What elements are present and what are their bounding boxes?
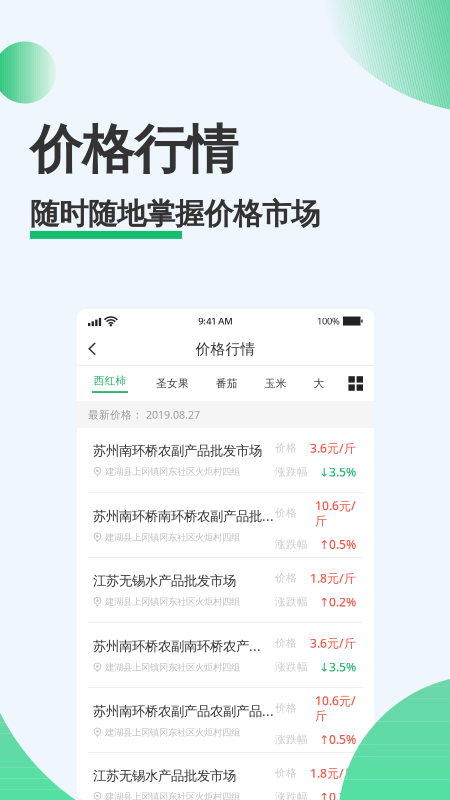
staticText: 价格行情 bbox=[195, 340, 255, 358]
staticText: 3.6元/斤 bbox=[310, 635, 356, 651]
staticText: 苏州南环桥农副产品批发市场 bbox=[93, 443, 262, 459]
staticText: 1.8元/斤 bbox=[310, 765, 356, 781]
button[interactable]: 玉米 bbox=[260, 371, 292, 396]
staticText: ↑0.5% bbox=[319, 536, 356, 552]
button[interactable]: 大 bbox=[308, 371, 329, 396]
button[interactable]: 江苏无锡水产品批发市场 bbox=[77, 558, 374, 623]
staticText: ↑0.2% bbox=[319, 789, 356, 800]
staticText: 番茄 bbox=[216, 377, 238, 390]
staticText: 涨跌幅 bbox=[275, 538, 308, 551]
staticText: 最新价格： 2019.08.27 bbox=[88, 407, 200, 422]
staticText: 建湖县上冈镇冈东社区火炬村四组 bbox=[105, 466, 240, 477]
staticText: ↓3.5% bbox=[319, 659, 356, 675]
staticText: 价格 bbox=[275, 441, 297, 455]
staticText: 苏州南环桥农副南环桥农产... bbox=[93, 637, 261, 655]
staticText: 建湖县上冈镇冈东社区火炬村四组 bbox=[105, 791, 240, 800]
staticText: 建湖县上冈镇冈东社区火炬村四组 bbox=[105, 727, 240, 738]
button[interactable]: 苏州南环桥农副产品批发市场 bbox=[77, 428, 374, 493]
staticText: 10.6元/斤 bbox=[315, 498, 356, 528]
button[interactable]: 番茄 bbox=[211, 371, 243, 396]
button[interactable]: Back bbox=[77, 333, 111, 365]
button[interactable]: 苏州南环桥农副南环桥农产... bbox=[77, 623, 374, 688]
button[interactable]: 西红柿 bbox=[86, 370, 134, 397]
staticText: 江苏无锡水产品批发市场 bbox=[93, 768, 236, 784]
staticText: ↓3.5% bbox=[319, 464, 356, 480]
button[interactable]: All categories bbox=[346, 370, 365, 397]
button[interactable]: 苏州南环桥南环桥农副产品批... bbox=[77, 493, 374, 558]
staticText: ↑0.2% bbox=[319, 594, 356, 610]
staticText: ↑0.5% bbox=[319, 731, 356, 747]
staticText: 价格行情 bbox=[30, 118, 238, 182]
staticText: 江苏无锡水产品批发市场 bbox=[93, 573, 236, 589]
staticText: 10.6元/斤 bbox=[315, 693, 356, 723]
staticText: 100% bbox=[317, 315, 340, 327]
staticText: 涨跌幅 bbox=[275, 790, 308, 800]
staticText: 西红柿 bbox=[93, 374, 126, 387]
staticText: 3.6元/斤 bbox=[310, 440, 356, 456]
button[interactable]: 圣女果 bbox=[151, 371, 194, 396]
button[interactable]: 江苏无锡水产品批发市场 bbox=[77, 753, 374, 800]
staticText: 大 bbox=[313, 377, 324, 390]
staticText: 玉米 bbox=[265, 377, 287, 390]
staticText: 价格 bbox=[275, 636, 297, 650]
staticText: 建湖县上冈镇冈东社区火炬村四组 bbox=[105, 532, 240, 543]
staticText: 价格 bbox=[275, 701, 297, 715]
staticText: 9:41 AM bbox=[198, 315, 233, 327]
staticText: 价格 bbox=[275, 766, 297, 780]
staticText: 建湖县上冈镇冈东社区火炬村四组 bbox=[105, 596, 240, 607]
button[interactable]: 苏州南环桥农副产品农副产品... bbox=[77, 688, 374, 753]
staticText: 1.8元/斤 bbox=[310, 570, 356, 586]
staticText: 建湖县上冈镇冈东社区火炬村四组 bbox=[105, 662, 240, 673]
staticText: 圣女果 bbox=[156, 377, 189, 390]
staticText: 涨跌幅 bbox=[275, 465, 308, 478]
staticText: 涨跌幅 bbox=[275, 733, 308, 746]
staticText: 涨跌幅 bbox=[275, 595, 308, 608]
staticText: 苏州南环桥农副产品农副产品... bbox=[93, 702, 274, 720]
staticText: 涨跌幅 bbox=[275, 660, 308, 673]
staticText: 随时随地掌握价格市场 bbox=[30, 196, 320, 232]
staticText: 价格 bbox=[275, 506, 297, 520]
staticText: 价格 bbox=[275, 571, 297, 585]
staticText: 苏州南环桥南环桥农副产品批... bbox=[93, 507, 274, 525]
